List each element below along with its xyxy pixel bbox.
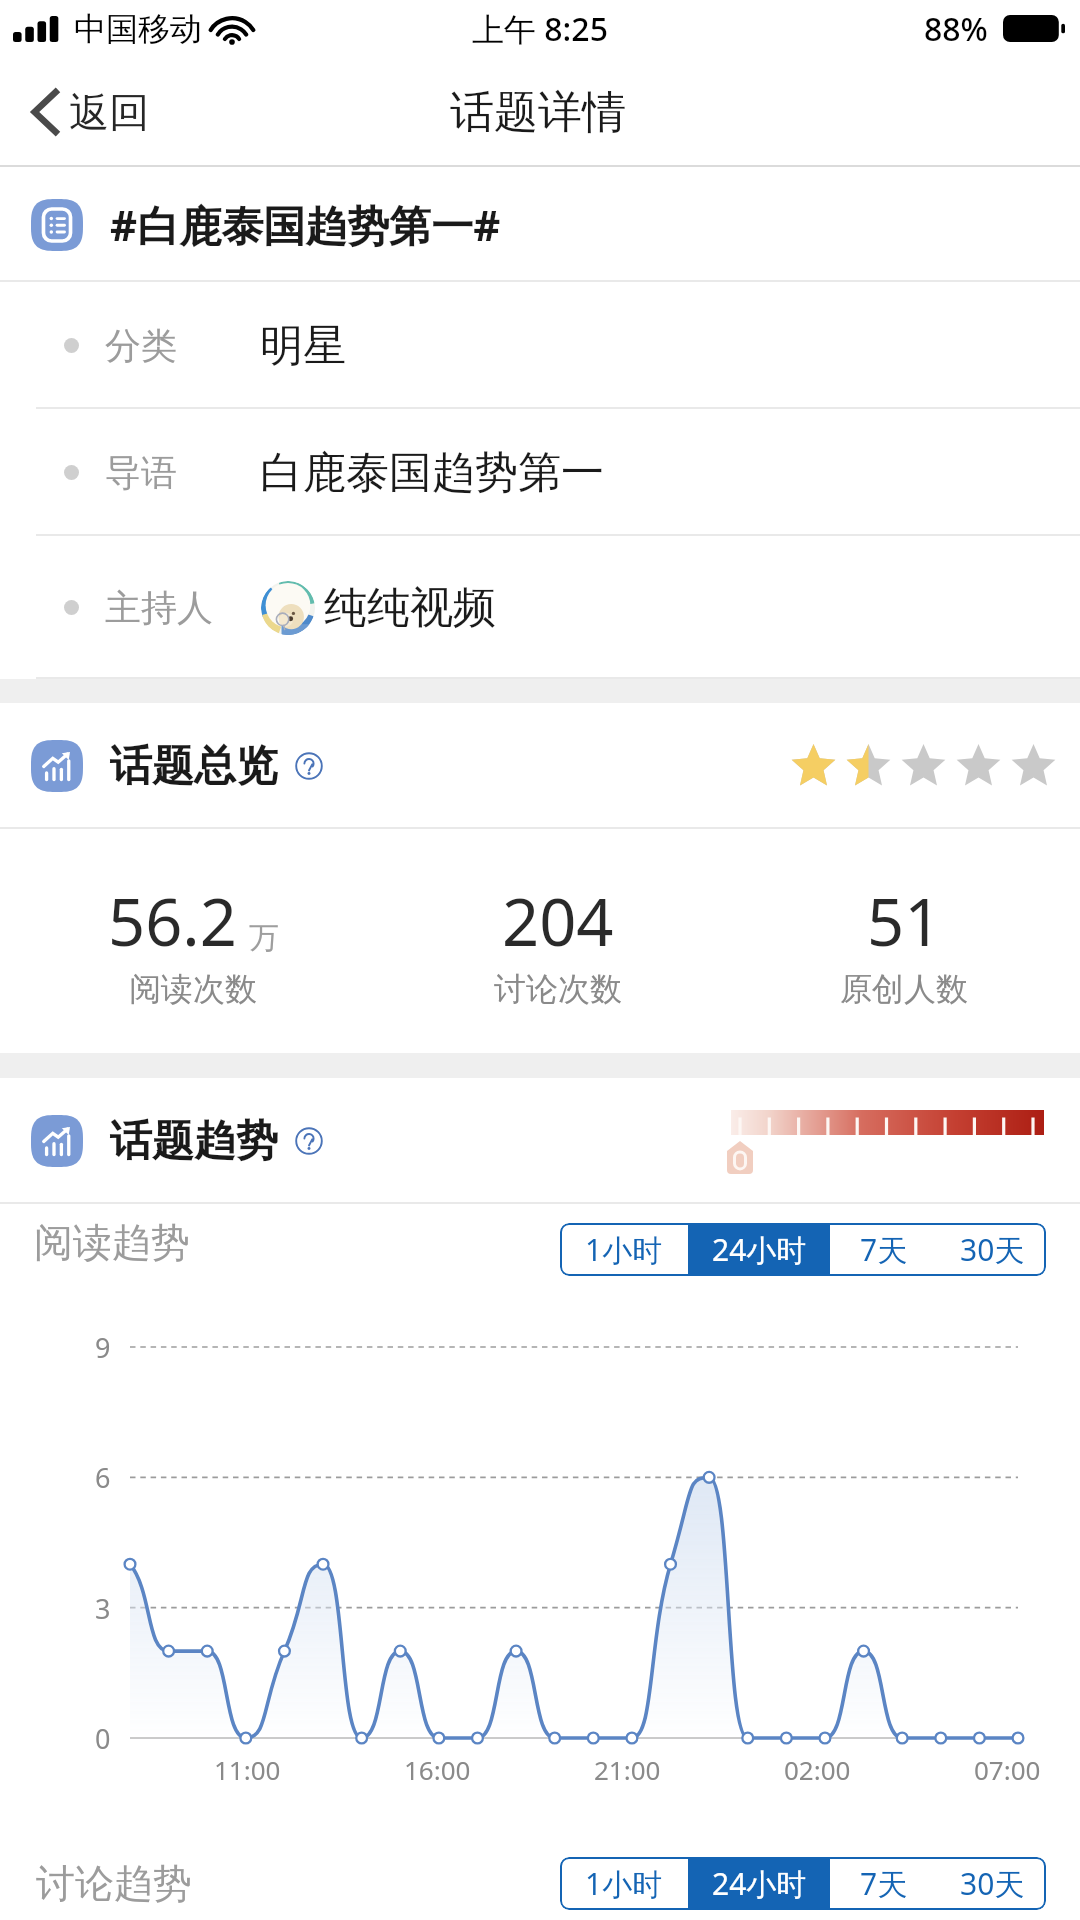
staticText: 3 bbox=[95, 1590, 111, 1627]
staticText: 主持人 bbox=[105, 585, 213, 630]
staticText: 话题趋势 bbox=[110, 1115, 278, 1168]
staticText: 30天 bbox=[960, 1229, 1025, 1270]
staticText: 原创人数 bbox=[840, 969, 968, 1009]
staticText: 24小时 bbox=[712, 1863, 807, 1904]
staticText: 阅读趋势 bbox=[34, 1218, 190, 1267]
button[interactable]: 话题总览 bbox=[0, 703, 1080, 829]
staticText: #白鹿泰国趋势第一# bbox=[110, 196, 501, 253]
staticText: 07:00 bbox=[974, 1752, 1041, 1787]
button[interactable]: 30天 bbox=[938, 1223, 1046, 1276]
staticText: 讨论次数 bbox=[494, 969, 622, 1009]
staticText: 阅读次数 bbox=[129, 969, 257, 1009]
staticText: 话题详情 bbox=[450, 85, 626, 140]
button[interactable]: 说明 bbox=[295, 1127, 323, 1155]
staticText: 白鹿泰国趋势第一 bbox=[260, 446, 604, 500]
button[interactable]: 分类 bbox=[0, 282, 1080, 409]
button[interactable]: #白鹿泰国趋势第一# bbox=[0, 167, 1080, 282]
button[interactable]: 30天 bbox=[938, 1857, 1046, 1910]
staticText: 话题总览 bbox=[110, 740, 278, 793]
staticText: 88% bbox=[924, 7, 988, 51]
staticText: 16:00 bbox=[404, 1752, 471, 1787]
button[interactable]: 说明 bbox=[295, 752, 323, 780]
staticText: 11:00 bbox=[214, 1752, 281, 1787]
staticText: 21:00 bbox=[594, 1752, 661, 1787]
staticText: 0 bbox=[95, 1720, 111, 1757]
staticText: 分类 bbox=[105, 323, 177, 368]
staticText: 万 bbox=[249, 919, 279, 957]
staticText: 纯纯视频 bbox=[324, 581, 496, 635]
button[interactable]: 1小时 bbox=[560, 1223, 688, 1276]
staticText: 7天 bbox=[860, 1229, 908, 1270]
staticText: 讨论趋势 bbox=[36, 1859, 192, 1908]
staticText: 7天 bbox=[860, 1863, 908, 1904]
button[interactable]: 24小时 bbox=[688, 1223, 830, 1276]
button[interactable]: 204 bbox=[388, 829, 728, 1053]
staticText: 上午 8:25 bbox=[472, 7, 608, 51]
staticText: 明星 bbox=[260, 319, 346, 373]
button[interactable]: 7天 bbox=[830, 1857, 938, 1910]
staticText: 204 bbox=[502, 877, 614, 966]
button[interactable]: 主持人 bbox=[0, 536, 1080, 679]
staticText: 9 bbox=[95, 1329, 111, 1366]
staticText: 02:00 bbox=[784, 1752, 851, 1787]
staticText: 51 bbox=[867, 877, 942, 966]
staticText: 1小时 bbox=[585, 1229, 663, 1270]
button[interactable]: 7天 bbox=[830, 1223, 938, 1276]
staticText: 30天 bbox=[960, 1863, 1025, 1904]
button[interactable]: 话题趋势 bbox=[0, 1078, 1080, 1204]
button[interactable]: 返回 bbox=[20, 77, 160, 147]
button[interactable]: 56.2 bbox=[23, 829, 363, 1053]
staticText: 中国移动 bbox=[74, 9, 202, 49]
button[interactable]: 51 bbox=[734, 829, 1074, 1053]
staticText: 6 bbox=[95, 1459, 111, 1496]
staticText: 导语 bbox=[105, 450, 177, 495]
button[interactable]: 24小时 bbox=[688, 1857, 830, 1910]
button[interactable]: 导语 bbox=[0, 409, 1080, 536]
staticText: 56.2 bbox=[108, 877, 237, 966]
staticText: 1小时 bbox=[585, 1863, 663, 1904]
staticText: 24小时 bbox=[712, 1229, 807, 1270]
button[interactable]: 1小时 bbox=[560, 1857, 688, 1910]
staticText: 返回 bbox=[69, 87, 149, 137]
